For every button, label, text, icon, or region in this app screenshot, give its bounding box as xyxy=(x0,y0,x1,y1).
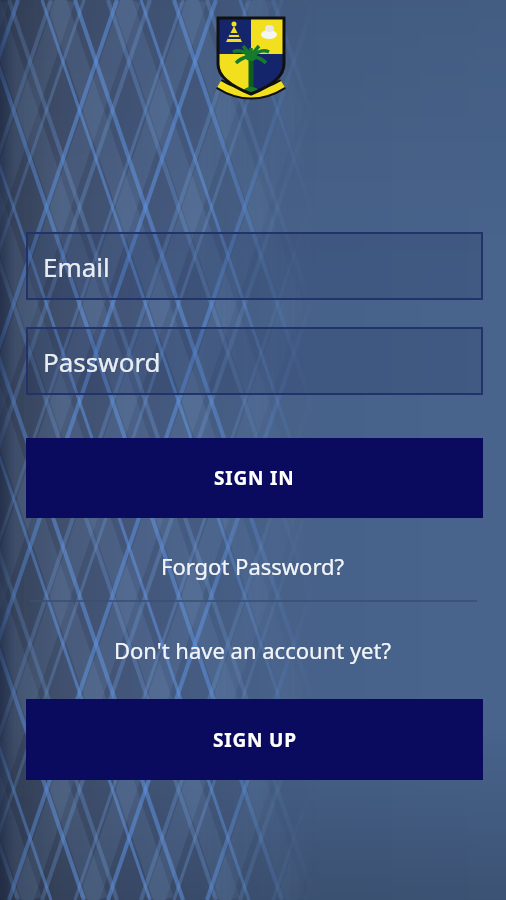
button[interactable]: Password xyxy=(26,327,483,395)
button[interactable]: SIGN UP xyxy=(26,699,483,780)
button[interactable]: Email xyxy=(26,232,483,300)
staticText: Email xyxy=(43,249,110,284)
staticText: SIGN IN xyxy=(214,465,295,491)
staticText: SIGN UP xyxy=(213,727,297,753)
button[interactable]: Forgot Password? xyxy=(0,546,506,586)
staticText: Don't have an account yet? xyxy=(114,635,392,665)
button[interactable]: SIGN IN xyxy=(26,438,483,518)
staticText: Password xyxy=(43,344,161,379)
staticText: Forgot Password? xyxy=(161,551,345,581)
